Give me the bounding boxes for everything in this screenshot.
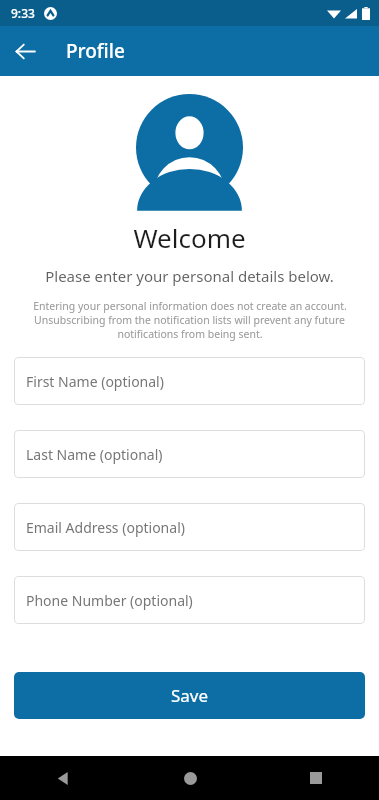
staticText: Save xyxy=(171,684,209,707)
staticText: Profile xyxy=(66,38,125,64)
staticText: Unsubscribing from the notification list… xyxy=(34,313,345,327)
button[interactable]: Recent apps xyxy=(253,756,379,800)
staticText: 9:33 xyxy=(11,5,35,21)
button[interactable]: Save xyxy=(14,672,365,719)
button[interactable]: Back xyxy=(0,756,127,800)
button[interactable]: Home xyxy=(127,756,253,800)
staticText: Please enter your personal details below… xyxy=(45,266,334,286)
staticText: Email Address (optional) xyxy=(26,518,185,537)
staticText: Phone Number (optional) xyxy=(26,591,193,610)
button[interactable]: Email Address (optional) xyxy=(14,503,365,551)
staticText: Welcome xyxy=(133,220,246,255)
button[interactable]: Phone Number (optional) xyxy=(14,576,365,624)
button[interactable]: Last Name (optional) xyxy=(14,430,365,478)
button[interactable]: Back xyxy=(7,33,43,69)
staticText: First Name (optional) xyxy=(26,372,164,391)
staticText: notifications from being sent. xyxy=(117,327,263,341)
button[interactable]: First Name (optional) xyxy=(14,357,365,405)
staticText: Last Name (optional) xyxy=(26,445,163,464)
staticText: Entering your personal information does … xyxy=(33,299,347,313)
